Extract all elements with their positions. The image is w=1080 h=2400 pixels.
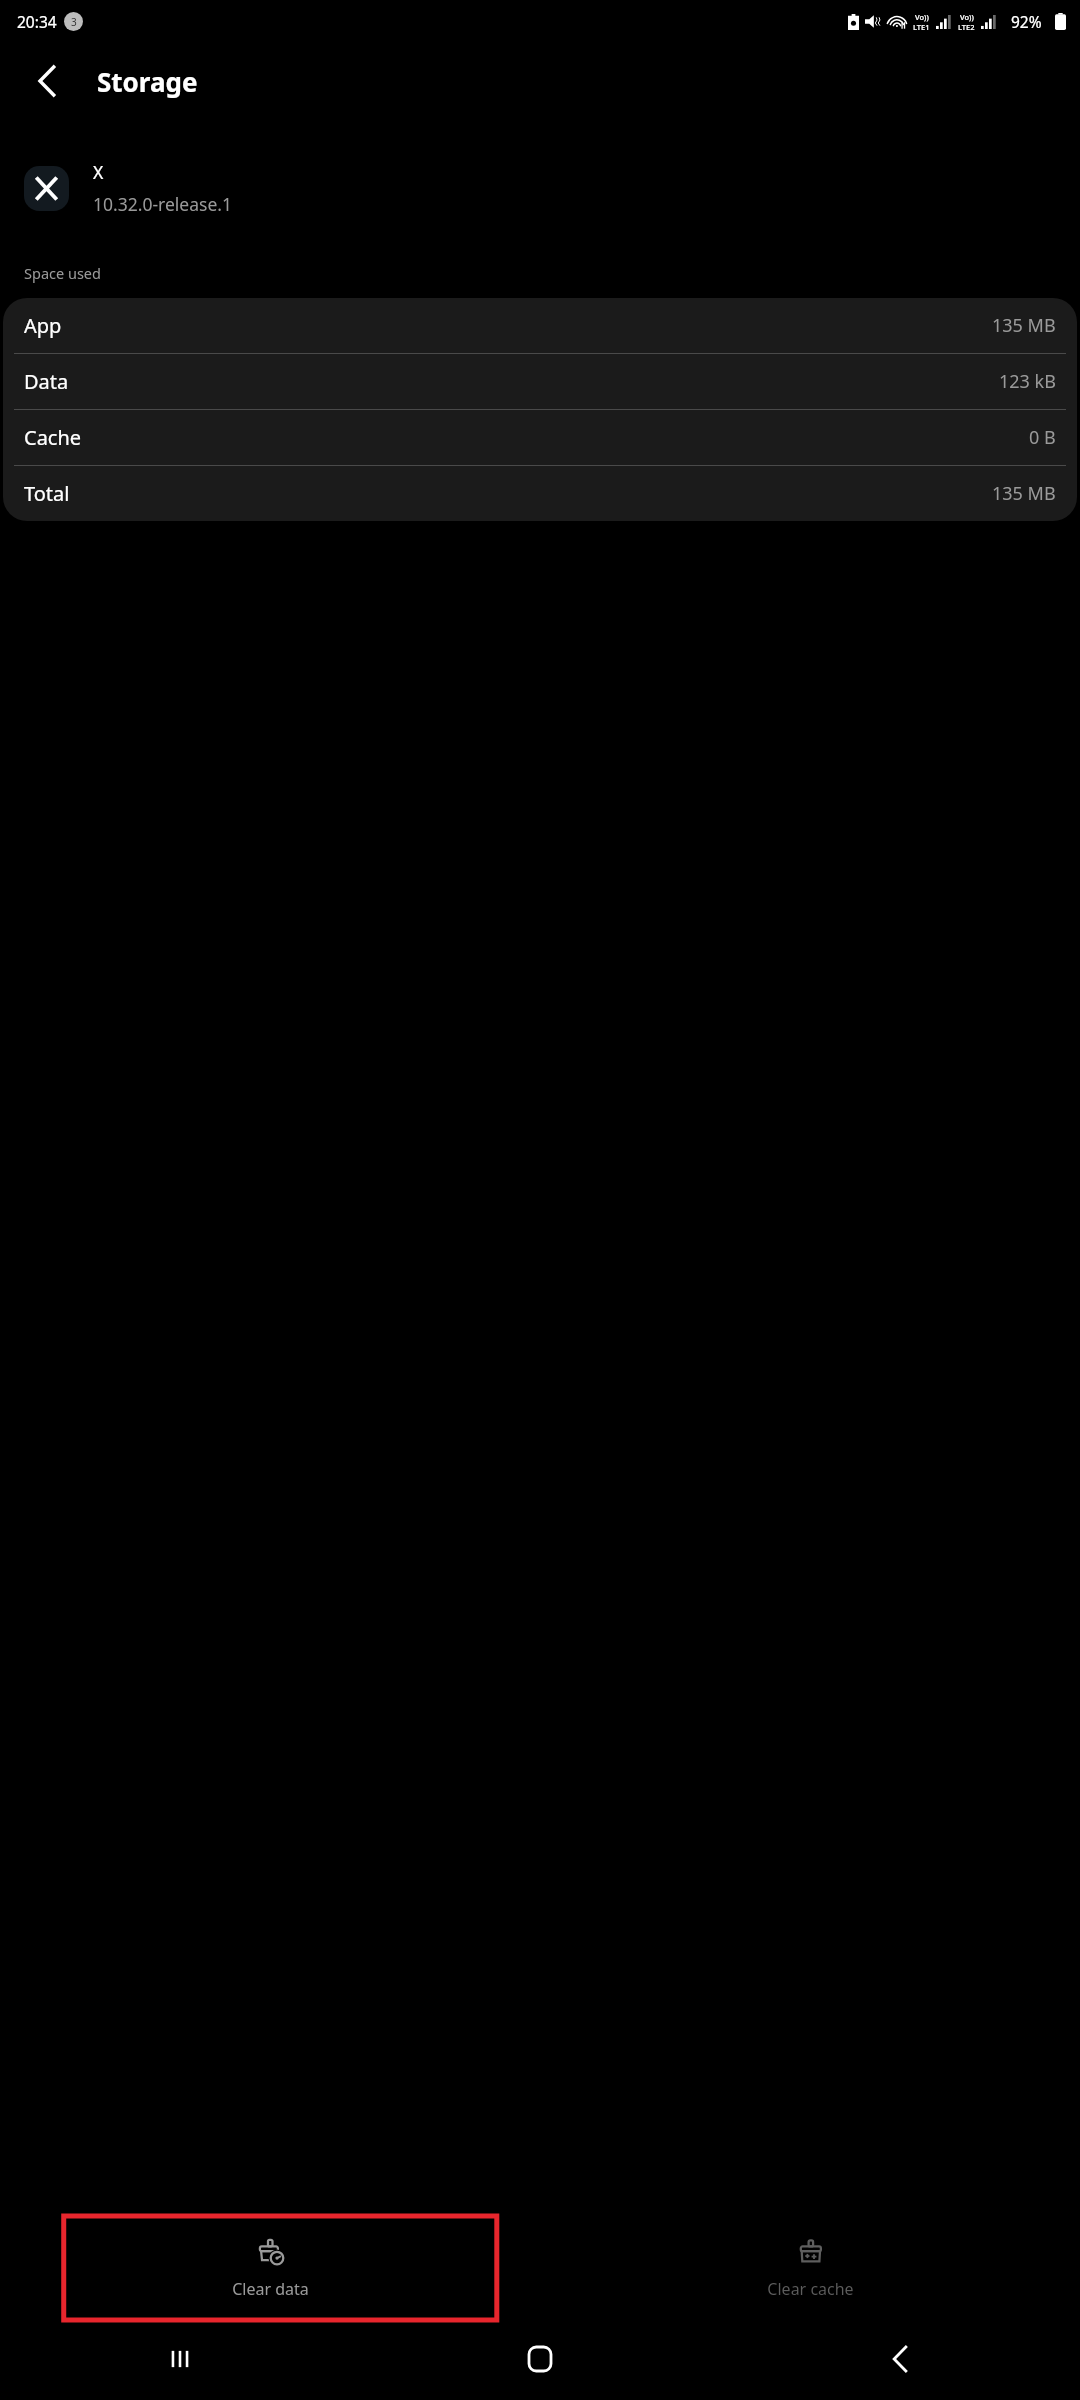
button[interactable]: Cache: [3, 410, 1077, 466]
staticText: LTE1: [913, 22, 930, 32]
staticText: Data: [24, 368, 69, 395]
staticText: Clear data: [232, 2278, 309, 2300]
staticText: Space used: [24, 263, 101, 283]
button[interactable]: Back: [20, 54, 74, 108]
staticText: Vo)): [960, 12, 974, 22]
staticText: App: [24, 312, 62, 339]
staticText: Storage: [97, 64, 198, 99]
button[interactable]: Back: [720, 2318, 1080, 2400]
button[interactable]: App: [3, 298, 1077, 354]
button[interactable]: Recent apps: [0, 2318, 360, 2400]
button[interactable]: Clear cache: [743, 2235, 877, 2302]
button[interactable]: Clear data: [203, 2235, 337, 2302]
staticText: 135 MB: [992, 313, 1056, 338]
staticText: 10.32.0-release.1: [93, 192, 232, 216]
staticText: 3: [71, 15, 77, 29]
staticText: 135 MB: [992, 481, 1056, 506]
staticText: Total: [24, 480, 70, 507]
button[interactable]: Home: [360, 2318, 720, 2400]
button[interactable]: Data: [3, 354, 1077, 410]
staticText: 123 kB: [999, 369, 1056, 394]
staticText: 0 B: [1029, 425, 1056, 450]
staticText: Vo)): [915, 12, 929, 22]
staticText: Cache: [24, 424, 82, 451]
staticText: Clear cache: [767, 2278, 854, 2300]
staticText: 92%: [1011, 11, 1042, 32]
button[interactable]: Total: [3, 466, 1077, 521]
staticText: X: [93, 160, 104, 184]
staticText: 20:34: [17, 11, 57, 32]
staticText: LTE2: [958, 22, 975, 32]
